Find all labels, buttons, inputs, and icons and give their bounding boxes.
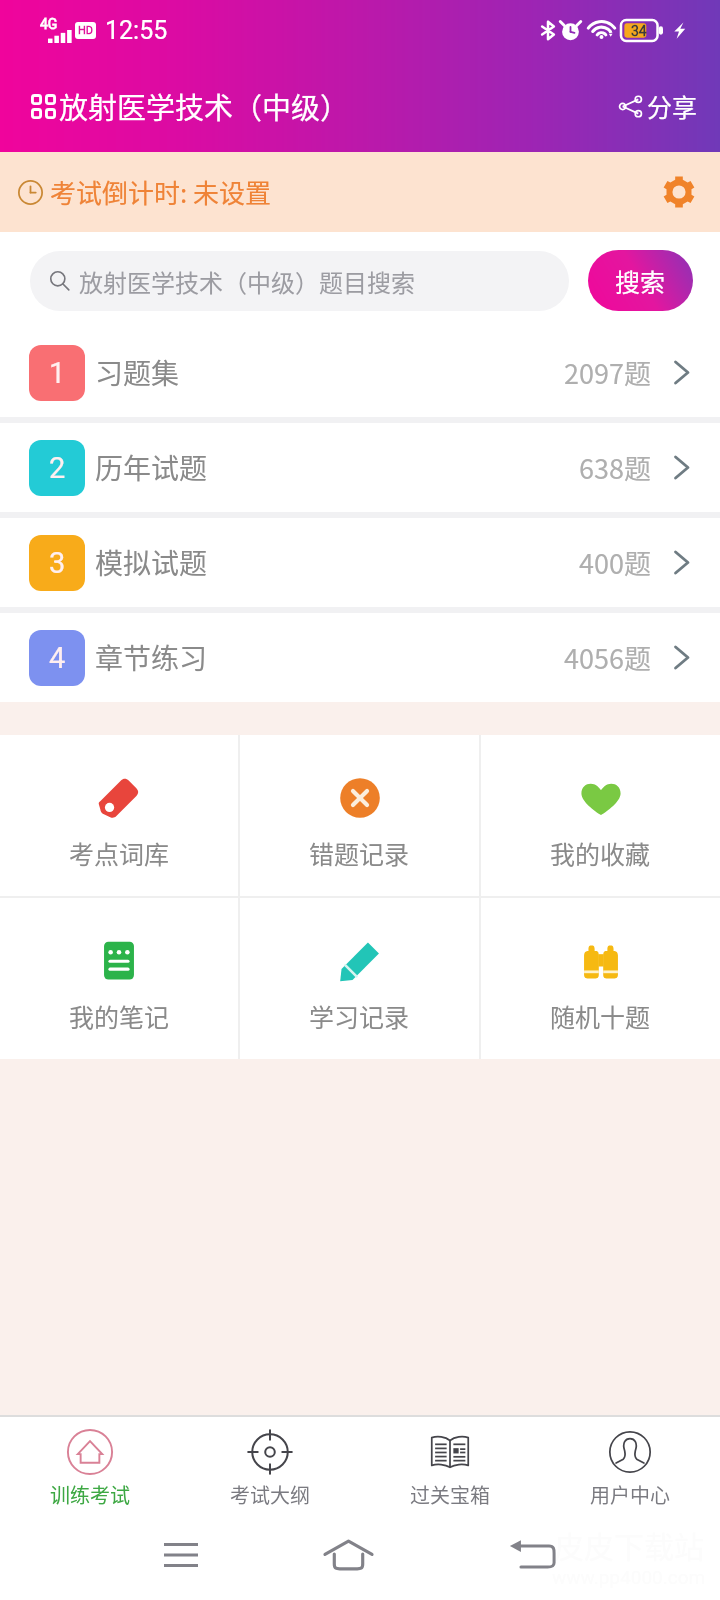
button[interactable]: 分享	[619, 88, 698, 124]
staticText: 考试大纲	[230, 1480, 310, 1509]
button[interactable]: Home	[258, 1510, 438, 1600]
staticText: 搜索	[615, 263, 666, 299]
button[interactable]: 我的收藏	[481, 735, 720, 896]
staticText: 34	[631, 23, 647, 39]
staticText: 638题	[579, 448, 651, 487]
button[interactable]: 1	[0, 328, 720, 417]
staticText: 分享	[647, 88, 698, 124]
button[interactable]: Recents	[104, 1510, 258, 1600]
staticText: 历年试题	[95, 447, 208, 488]
staticText: 400题	[579, 543, 651, 582]
button[interactable]: 考点词库	[0, 735, 238, 896]
button[interactable]: 随机十题	[481, 898, 720, 1059]
button[interactable]: 搜索	[588, 250, 693, 311]
staticText: 我的收藏	[550, 835, 651, 871]
button[interactable]: 过关宝箱	[360, 1417, 540, 1510]
staticText: 2	[49, 451, 66, 485]
button[interactable]: 错题记录	[240, 735, 479, 896]
staticText: 4056题	[564, 638, 651, 677]
button[interactable]: 4	[0, 613, 720, 702]
staticText: 章节练习	[95, 637, 208, 678]
staticText: 过关宝箱	[410, 1480, 490, 1509]
button[interactable]: 训练考试	[0, 1417, 180, 1510]
button[interactable]: 放射医学技术（中级）	[31, 85, 350, 127]
button[interactable]: 考试大纲	[180, 1417, 360, 1510]
button[interactable]: Back	[438, 1510, 626, 1600]
staticText: 模拟试题	[95, 542, 208, 583]
button[interactable]: 我的笔记	[0, 898, 238, 1059]
staticText: 习题集	[95, 352, 180, 393]
staticText: 错题记录	[309, 835, 410, 871]
button[interactable]: 用户中心	[540, 1417, 720, 1510]
staticText: 用户中心	[590, 1480, 670, 1509]
staticText: 考点词库	[69, 835, 170, 871]
staticText: HD	[78, 24, 94, 37]
staticText: 放射医学技术（中级）题目搜索	[79, 264, 415, 299]
button[interactable]: 2	[0, 423, 720, 512]
staticText: 学习记录	[309, 998, 410, 1034]
button[interactable]: 放射医学技术（中级）题目搜索	[30, 251, 569, 311]
staticText: 1	[49, 356, 66, 390]
button[interactable]: 设置	[657, 170, 701, 214]
staticText: www.pp4000.com	[552, 1566, 706, 1588]
staticText: 12:55	[105, 16, 168, 45]
staticText: 3	[49, 546, 66, 580]
staticText: 我的笔记	[69, 998, 170, 1034]
staticText: 4	[49, 641, 66, 675]
staticText: 4G	[40, 16, 58, 32]
staticText: 考试倒计时: 未设置	[50, 173, 272, 211]
button[interactable]: 学习记录	[240, 898, 479, 1059]
button[interactable]: 考试倒计时: 未设置	[0, 152, 720, 232]
staticText: 2097题	[564, 353, 651, 392]
staticText: 随机十题	[550, 998, 651, 1034]
staticText: 皮皮下载站	[554, 1523, 704, 1566]
button[interactable]: 3	[0, 518, 720, 607]
staticText: 训练考试	[50, 1480, 130, 1509]
staticText: 放射医学技术（中级）	[59, 85, 350, 127]
